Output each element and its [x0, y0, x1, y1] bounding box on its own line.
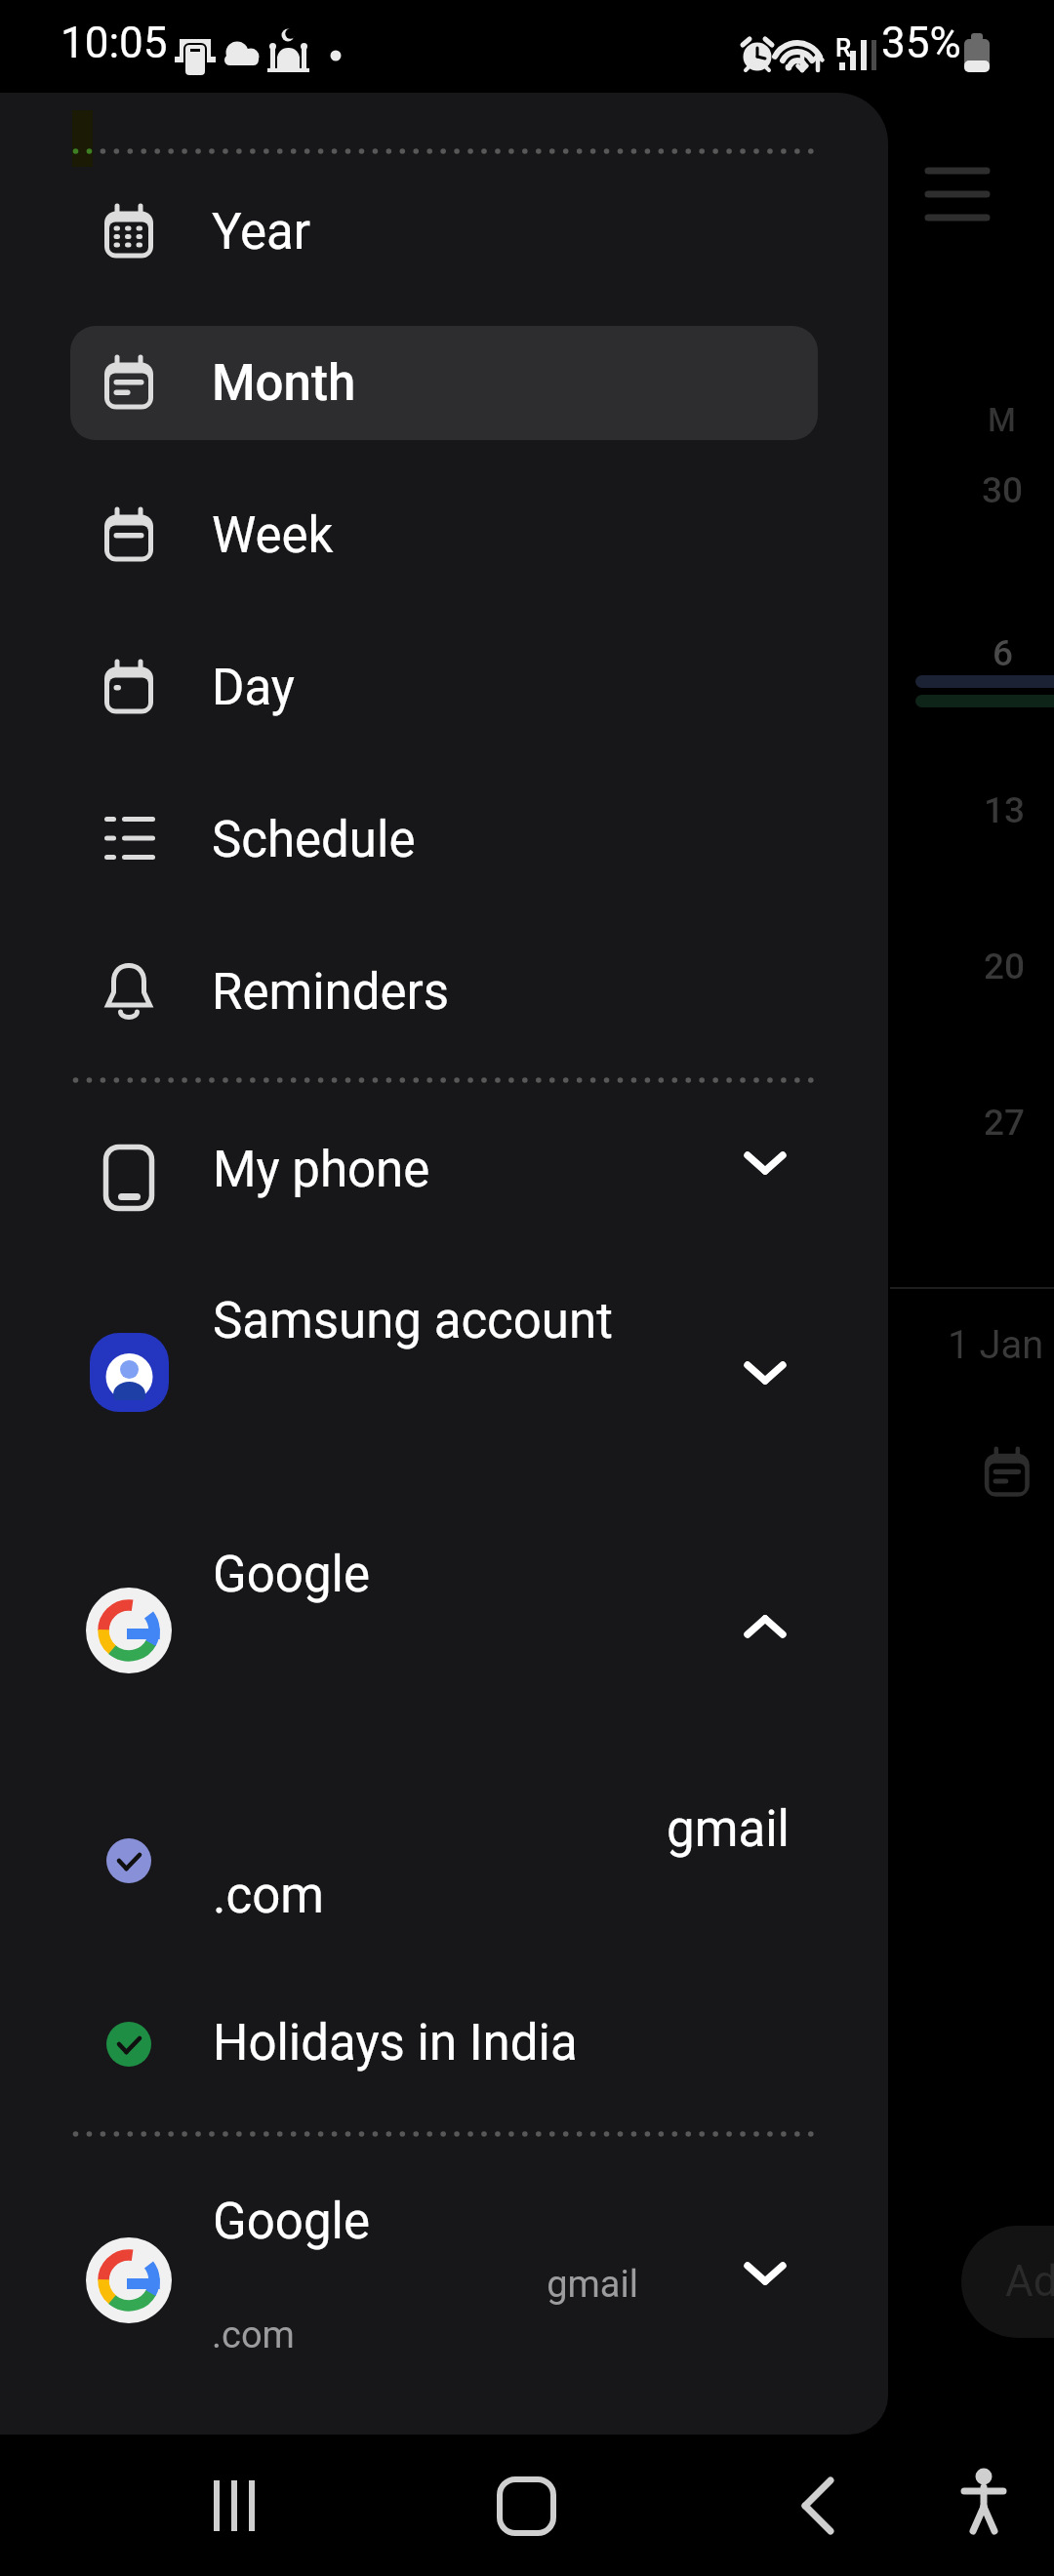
button[interactable]: Collapse	[716, 1578, 814, 1675]
staticText: 35%	[881, 18, 961, 68]
staticText: Week	[212, 506, 334, 565]
staticText: Add	[1005, 2256, 1054, 2307]
staticText: 30	[982, 469, 1024, 511]
button[interactable]: Year	[70, 175, 818, 289]
staticText: 10:05	[61, 18, 168, 68]
staticText: 6	[993, 632, 1014, 674]
staticText: Day	[212, 659, 295, 717]
staticText: Holidays in India	[213, 2014, 578, 2073]
button[interactable]: Week	[70, 478, 818, 592]
staticText: Google	[213, 1546, 370, 1604]
button[interactable]: Add event	[961, 2226, 1054, 2338]
button[interactable]: Expand	[716, 1324, 814, 1422]
staticText: Schedule	[212, 811, 416, 869]
staticText: Google	[213, 2193, 370, 2251]
staticText: M	[988, 401, 1016, 439]
staticText: 13	[984, 789, 1026, 831]
button[interactable]: gmail	[0, 1781, 820, 2034]
button[interactable]: Schedule	[70, 783, 818, 897]
staticText: Samsung account	[213, 1292, 613, 1350]
staticText: .com	[212, 2314, 295, 2357]
button[interactable]: Open navigation menu	[899, 127, 1016, 244]
button[interactable]: My phone	[0, 1086, 820, 1248]
button[interactable]: Expand	[716, 2225, 814, 2322]
staticText: My phone	[213, 1141, 430, 1199]
button[interactable]: Reminders	[70, 935, 818, 1049]
button[interactable]: Home	[459, 2437, 595, 2574]
staticText: 20	[984, 946, 1026, 987]
button[interactable]: Samsung account	[0, 1283, 820, 1517]
staticText: gmail	[204, 1800, 790, 1859]
staticText: 1 Jan 20	[948, 1322, 1054, 1368]
button[interactable]: Holidays in India	[0, 1976, 820, 2113]
staticText: gmail	[204, 2263, 638, 2307]
button[interactable]: Accessibility	[925, 2437, 1042, 2574]
staticText: 27	[984, 1102, 1026, 1144]
staticText: Year	[212, 203, 311, 262]
button[interactable]: Back	[751, 2437, 888, 2574]
button[interactable]: Month	[70, 326, 818, 440]
staticText: Reminders	[212, 963, 450, 1022]
staticText: Month	[212, 354, 356, 413]
staticText: R	[835, 33, 852, 62]
button[interactable]: Day	[70, 630, 818, 745]
button[interactable]: Recent apps	[166, 2437, 303, 2574]
button[interactable]: Google	[0, 2152, 820, 2415]
button[interactable]: Expand	[716, 1114, 814, 1212]
button[interactable]: Google	[0, 1508, 820, 1732]
staticText: .com	[213, 1867, 324, 1925]
